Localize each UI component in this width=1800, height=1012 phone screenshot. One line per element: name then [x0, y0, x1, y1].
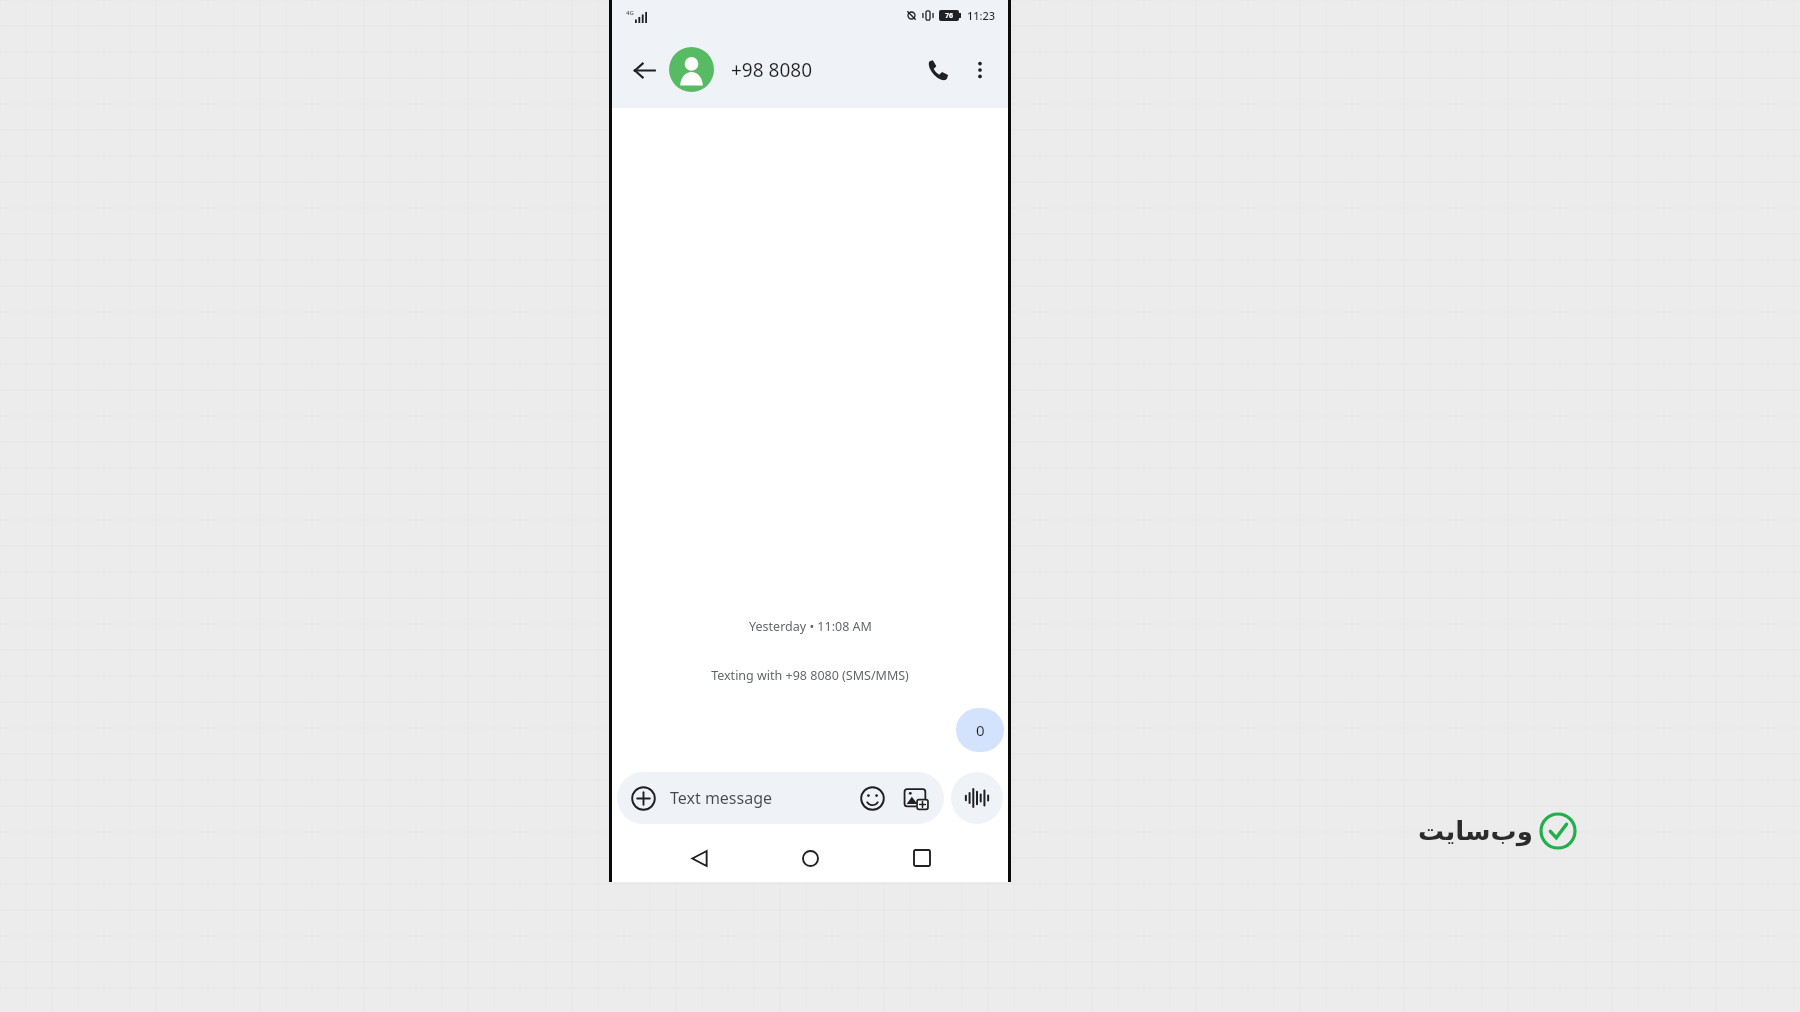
button[interactable]: Back	[622, 48, 666, 92]
staticText: Text message	[670, 787, 853, 809]
button[interactable]: Send image	[897, 779, 935, 817]
button[interactable]: Recent apps	[897, 834, 947, 882]
button[interactable]: Emoji	[853, 779, 891, 817]
button[interactable]: Record audio	[951, 772, 1003, 824]
staticText: Yesterday • 11:08 AM	[749, 618, 872, 635]
button[interactable]: Home	[785, 834, 835, 882]
staticText: 11:23	[967, 8, 996, 23]
button[interactable]: +98 8080	[669, 47, 914, 92]
button[interactable]: Add attachment	[617, 772, 944, 824]
staticText: وب‌سایت	[1418, 816, 1533, 846]
staticText: Texting with +98 8080 (SMS/MMS)	[711, 667, 909, 684]
button[interactable]: Add attachment	[624, 779, 662, 817]
staticText: 76	[945, 11, 954, 21]
button[interactable]: Call	[914, 47, 960, 93]
button[interactable]: 0	[956, 708, 1004, 752]
staticText: 4G	[626, 9, 634, 17]
button[interactable]: More options	[960, 50, 1000, 90]
button[interactable]: Back	[674, 834, 724, 882]
staticText: +98 8080	[731, 57, 813, 83]
staticText: 0	[976, 720, 985, 740]
